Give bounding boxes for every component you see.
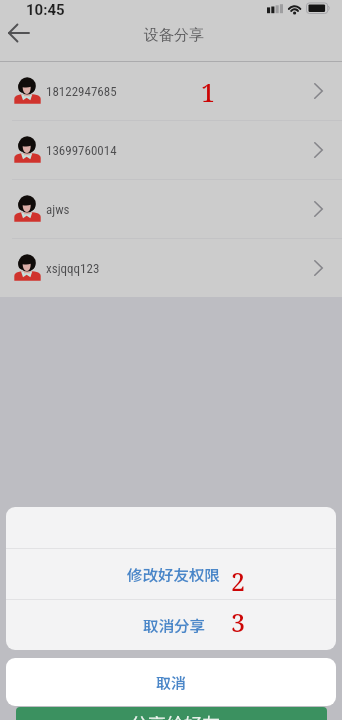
button[interactable]: Back — [3, 18, 33, 48]
button[interactable]: ajws — [0, 180, 342, 238]
button[interactable]: 分享给好友 — [16, 707, 327, 720]
staticText: 18122947685 — [46, 84, 117, 99]
staticText: 设备分享 — [144, 26, 204, 45]
staticText: 1 — [201, 75, 216, 109]
staticText: 取消分享 — [143, 614, 206, 636]
button[interactable]: 取消分享 — [6, 600, 336, 650]
staticText: xsjqqq123 — [46, 261, 100, 276]
button[interactable]: 13699760014 — [0, 121, 342, 179]
button[interactable]: 修改好友权限 — [6, 549, 336, 599]
button[interactable]: 18122947685 — [0, 62, 342, 120]
staticText: ajws — [46, 202, 70, 217]
staticText: 取消 — [156, 672, 187, 694]
staticText: 修改好友权限 — [127, 563, 221, 585]
staticText: 13699760014 — [46, 143, 117, 158]
staticText: 2 — [231, 564, 246, 598]
button[interactable]: 取消 — [6, 658, 336, 706]
staticText: 分享给好友 — [130, 710, 220, 720]
staticText: 10:45 — [26, 1, 65, 19]
staticText: 3 — [231, 605, 246, 639]
button[interactable]: xsjqqq123 — [0, 239, 342, 297]
